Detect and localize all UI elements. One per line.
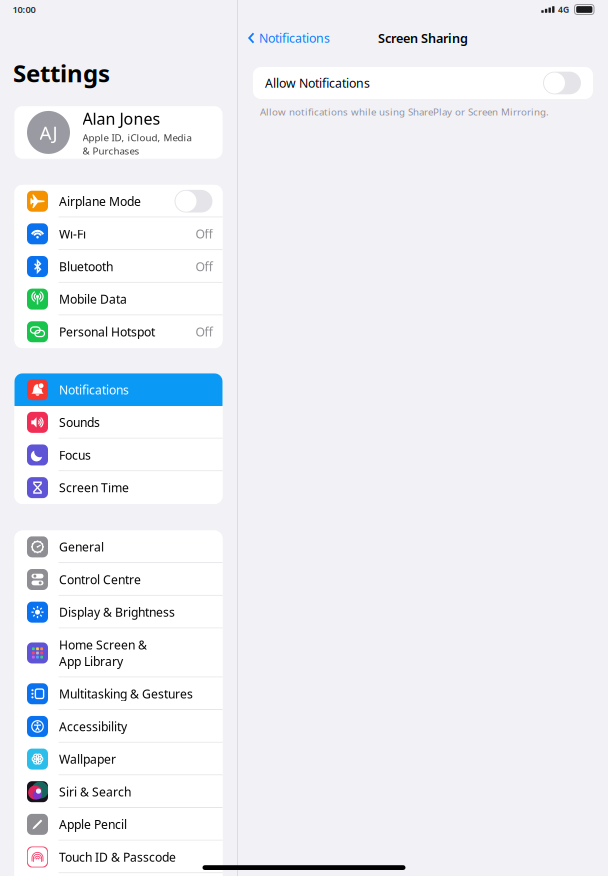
staticText: Allow Notifications [265,75,370,91]
staticText: Mobile Data [59,291,127,307]
staticText: Control Centre [59,571,141,588]
button[interactable]: Focus [14,439,222,471]
staticText: 4G [558,4,569,15]
button[interactable]: Siri & Search [14,775,222,808]
staticText: Off [195,323,212,340]
staticText: 10:00 [12,3,35,16]
button[interactable]: Accessibility [14,710,222,743]
button[interactable]: Touch ID & Passcode [14,841,222,873]
button[interactable]: Screen Time [14,471,222,504]
staticText: Siri & Search [59,783,131,800]
staticText: Focus [59,447,91,463]
staticText: General [59,539,104,555]
staticText: Airplane Mode [59,193,141,209]
staticText: Screen Sharing [378,29,468,47]
staticText: Touch ID & Passcode [59,849,176,865]
button[interactable]: Multitasking & Gestures [14,677,222,710]
staticText: Sounds [59,414,100,431]
staticText: Display & Brightness [59,604,175,620]
staticText: Wallpaper [59,751,116,767]
staticText: Allow notifications while using SharePla… [260,105,549,118]
staticText: Screen Time [59,479,129,496]
button[interactable]: Apple Pencil [14,808,222,841]
staticText: Notifications [259,30,330,46]
button[interactable]: Sounds [14,406,222,439]
staticText: Apple Pencil [59,816,127,833]
button[interactable]: Airplane Mode [14,185,222,217]
button[interactable]: Control Centre [14,563,222,596]
staticText: AJ [39,120,57,145]
button[interactable]: Notifications [238,25,330,51]
button[interactable]: Mobile Data [14,283,222,315]
button[interactable]: Bluetooth [14,250,222,283]
staticText: Off [195,226,212,242]
staticText: Off [195,258,212,275]
button[interactable]: General [14,530,222,563]
button[interactable]: Personal Hotspot [14,315,222,348]
staticText: Alan Jones [82,107,160,129]
staticText: Multitasking & Gestures [59,685,193,702]
button[interactable]: Wi-Fi [14,217,222,250]
button[interactable]: AJ [14,106,222,159]
staticText: Settings [13,56,110,89]
button[interactable]: Home Screen & App Library [14,628,222,677]
staticText: Accessibility [59,718,127,735]
button[interactable]: Allow Notifications [253,67,593,99]
staticText: Bluetooth [59,258,113,275]
staticText: Wi-Fi [59,226,86,242]
staticText: Notifications [59,381,129,398]
button[interactable]: Wallpaper [14,743,222,775]
button[interactable]: Display & Brightness [14,596,222,628]
staticText: Personal Hotspot [59,323,155,340]
staticText: Apple ID, iCloud, Media & Purchases [82,131,191,157]
button[interactable]: Notifications [14,373,222,406]
staticText: Home Screen & App Library [59,636,147,669]
